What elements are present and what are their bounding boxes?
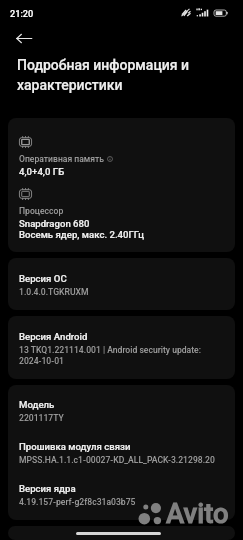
- staticText: Версия Android: [19, 331, 88, 342]
- staticText: Версия ядра: [19, 483, 76, 494]
- staticText: MPSS.HA.1.1.c1-00027-KD_ALL_PACK-3.21298…: [19, 455, 215, 465]
- staticText: Avito: [166, 497, 229, 529]
- staticText: Процессор: [19, 206, 64, 216]
- staticText: 21:20: [10, 8, 34, 19]
- staticText: 4.19.157-perf-g2f8c31a03b75: [19, 497, 136, 507]
- staticText: Восемь ядер, макс. 2.40ГГц: [19, 229, 145, 240]
- staticText: 1.0.4.0.TGKRUXM: [19, 287, 89, 297]
- button[interactable]: Версия Android: [8, 316, 235, 379]
- button[interactable]: Версия ОС: [8, 258, 235, 310]
- staticText: 2201117TY: [19, 413, 64, 423]
- staticText: Прошивка модуля связи: [19, 441, 131, 452]
- staticText: 4,0+4,0 ГБ: [19, 166, 65, 177]
- button[interactable]: Модель: [8, 385, 235, 520]
- staticText: Snapdragon 680: [19, 218, 90, 229]
- button[interactable]: Оперативная память: [8, 118, 235, 252]
- button[interactable]: Время работы: [8, 526, 235, 540]
- button[interactable]: Back: [6, 27, 42, 49]
- staticText: Подробная информация и характеристики: [17, 57, 225, 94]
- staticText: Версия ОС: [19, 273, 67, 284]
- staticText: Модель: [19, 399, 55, 410]
- staticText: 13 TKQ1.221114.001 | Android security up…: [19, 345, 224, 366]
- staticText: Оперативная память: [19, 154, 105, 164]
